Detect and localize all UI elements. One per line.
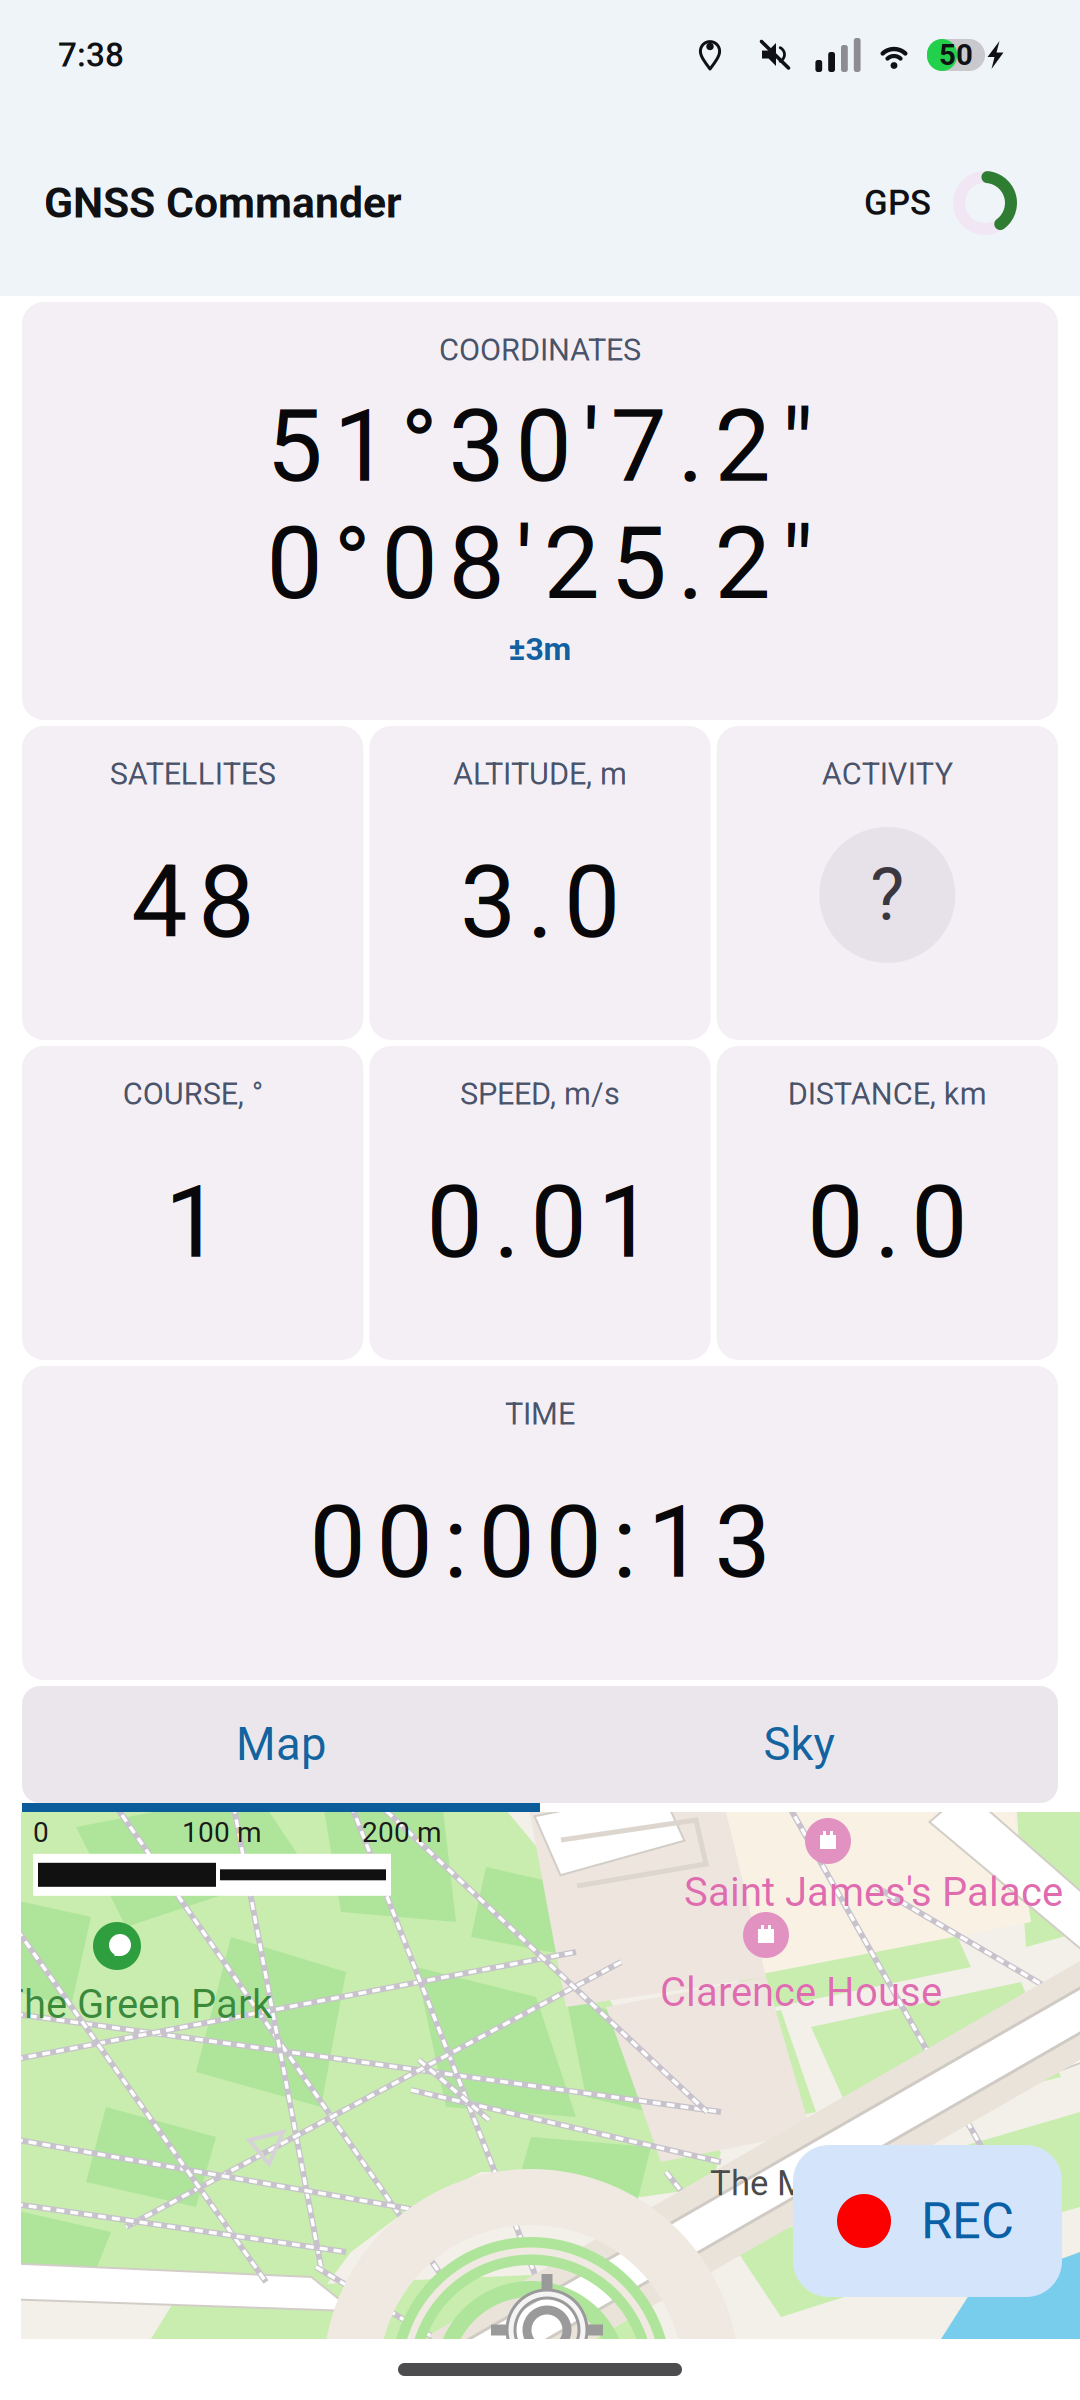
staticText: ACTIVITY bbox=[822, 756, 953, 792]
staticText: The Green Park bbox=[0, 1981, 272, 2028]
staticText: ±3m bbox=[508, 630, 571, 668]
staticText: 0°08'25.2" bbox=[266, 505, 813, 622]
staticText: 200 m bbox=[362, 1816, 442, 1849]
staticText: ? bbox=[870, 853, 904, 937]
staticText: COORDINATES bbox=[439, 332, 641, 368]
staticText: DISTANCE, km bbox=[788, 1076, 987, 1112]
button[interactable]: GPS status bbox=[864, 170, 1018, 236]
staticText: 51°30'7.2" bbox=[266, 388, 813, 505]
staticText: 7:38 bbox=[58, 35, 124, 75]
staticText: TIME bbox=[505, 1396, 575, 1432]
staticText: 0.0 bbox=[807, 1164, 967, 1281]
staticText: SATELLITES bbox=[110, 756, 276, 792]
button[interactable]: Sky bbox=[540, 1686, 1058, 1803]
staticText: 00:00:13 bbox=[309, 1484, 770, 1601]
staticText: GNSS Commander bbox=[44, 178, 402, 228]
staticText: ALTITUDE, m bbox=[453, 756, 627, 792]
staticText: The Mall bbox=[710, 2163, 842, 2204]
staticText: The Mall bbox=[710, 2163, 842, 2204]
staticText: Clarence House bbox=[660, 1969, 942, 2016]
staticText: Sky bbox=[763, 1718, 834, 1771]
staticText: 50 bbox=[939, 38, 973, 72]
staticText: 0.01 bbox=[426, 1164, 653, 1281]
staticText: GPS bbox=[864, 183, 931, 223]
staticText: 0 bbox=[33, 1816, 49, 1849]
staticText: Saint James's Palace bbox=[684, 1869, 1063, 1916]
staticText: 3.0 bbox=[460, 844, 620, 961]
staticText: 100 m bbox=[182, 1816, 262, 1849]
staticText: Map bbox=[236, 1718, 326, 1771]
button[interactable]: REC bbox=[793, 2145, 1062, 2297]
staticText: The Green Park bbox=[0, 1981, 272, 2028]
button[interactable]: Map bbox=[22, 1686, 540, 1803]
staticText: Clarence House bbox=[660, 1969, 942, 2016]
staticText: 1 bbox=[165, 1164, 221, 1281]
staticText: COURSE, ° bbox=[123, 1076, 263, 1112]
staticText: Saint James's Palace bbox=[684, 1869, 1063, 1916]
staticText: SPEED, m/s bbox=[460, 1076, 620, 1112]
staticText: REC bbox=[921, 2191, 1014, 2251]
staticText: 48 bbox=[131, 844, 254, 961]
